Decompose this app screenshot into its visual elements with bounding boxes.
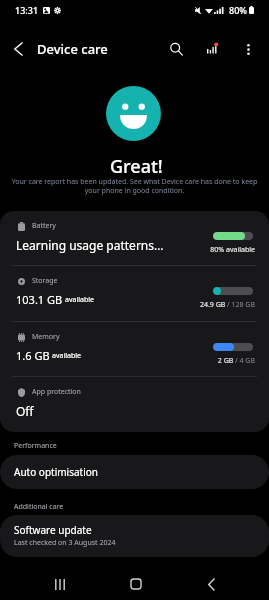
staticText: Learning usage patterns… [16,237,164,253]
button[interactable]: Software update [0,515,269,557]
button[interactable]: Search [158,31,194,67]
staticText: Memory [32,332,60,342]
staticText: Great! [110,154,163,179]
staticText: available [65,295,95,305]
staticText: App protection [32,387,81,397]
staticText: Your care report has been updated. See w… [11,177,258,195]
button[interactable]: Battery [0,211,269,266]
staticText: 80% [229,4,247,16]
button[interactable]: App protection [0,377,269,432]
button[interactable]: Auto optimisation [0,455,269,489]
staticText: 103.1 GB [16,292,63,307]
staticText: Battery [32,221,56,231]
staticText: Off [16,403,34,419]
staticText: Performance [14,441,57,451]
button[interactable]: Memory [0,322,269,377]
staticText: Auto optimisation [14,465,98,479]
button[interactable]: More options [230,31,266,67]
staticText: 80% available [0,245,255,255]
staticText: Software update [14,523,92,537]
staticText: 2 GB / 4 GB [0,356,255,366]
button[interactable]: Care report [194,31,230,67]
staticText: Additional care [14,502,64,512]
button[interactable]: Storage [0,266,269,322]
staticText: available [52,351,82,361]
button[interactable]: Back [191,568,231,600]
staticText: 24.9 GB / 128 GB [0,300,255,310]
button[interactable]: Navigate up [0,31,36,67]
staticText: Storage [32,276,58,286]
staticText: Last checked on 3 August 2024 [14,538,116,548]
staticText: Device care [37,40,108,58]
button[interactable]: Home [116,568,156,600]
staticText: 13:31 [15,4,39,16]
button[interactable]: Recent apps [40,568,80,600]
staticText: 1.6 GB [16,348,50,363]
